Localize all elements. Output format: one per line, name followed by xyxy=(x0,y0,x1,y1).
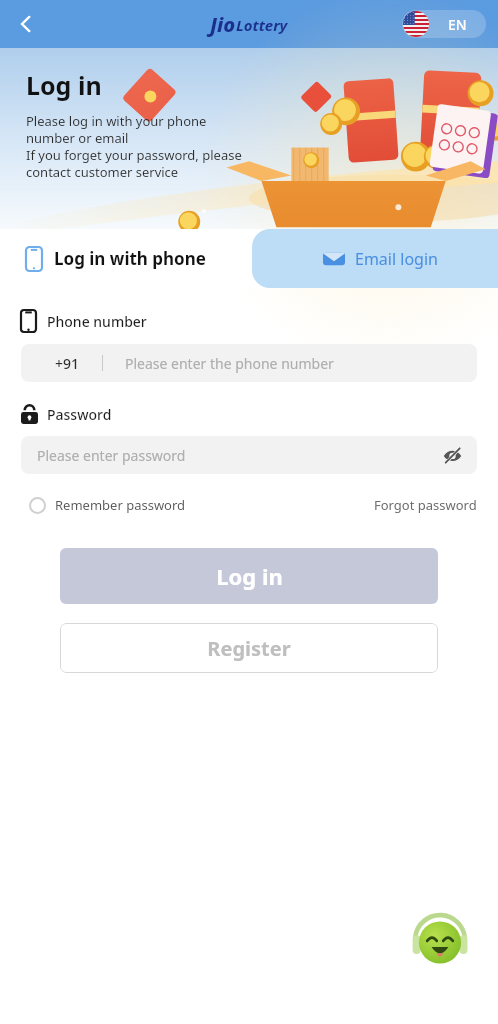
button[interactable]: +91 xyxy=(21,344,477,382)
button[interactable]: Log in xyxy=(60,548,438,604)
staticText: Please enter the phone number xyxy=(125,354,334,373)
staticText: EN xyxy=(448,15,467,34)
staticText: Forgot password xyxy=(374,496,477,514)
staticText: Email login xyxy=(355,248,438,270)
button[interactable]: Customer service xyxy=(409,909,471,971)
button[interactable]: EN xyxy=(402,10,486,38)
button[interactable]: Please enter password xyxy=(21,436,477,474)
staticText: Jio xyxy=(210,11,236,38)
button[interactable]: Back xyxy=(6,4,46,44)
button[interactable]: Email login xyxy=(252,229,498,288)
staticText: Log in xyxy=(216,561,283,591)
staticText: +91 xyxy=(55,354,80,373)
staticText: Please log in with your phone number or … xyxy=(26,112,242,181)
staticText: Log in xyxy=(26,68,102,102)
staticText: Remember password xyxy=(55,496,186,514)
staticText: Phone number xyxy=(47,312,147,331)
staticText: Register xyxy=(207,635,291,662)
button[interactable]: Remember password xyxy=(21,492,186,518)
button[interactable]: Forgot password xyxy=(374,492,477,518)
button[interactable]: Register xyxy=(60,623,438,673)
staticText: Please enter password xyxy=(37,446,186,465)
staticText: Lottery xyxy=(236,15,288,35)
button[interactable]: Log in with phone xyxy=(0,229,250,288)
staticText: Password xyxy=(47,405,112,424)
button[interactable]: Show password xyxy=(439,442,465,468)
staticText: Log in with phone xyxy=(54,247,206,270)
